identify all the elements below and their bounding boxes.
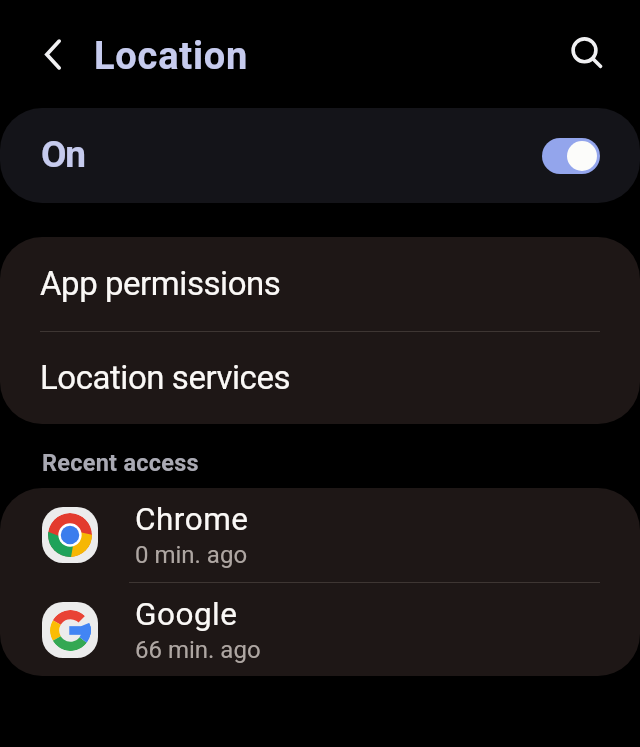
button[interactable]: On <box>0 108 640 203</box>
staticText: Recent access <box>42 449 199 476</box>
staticText: App permissions <box>40 265 281 303</box>
button[interactable]: Search <box>559 25 609 75</box>
button[interactable]: Chrome <box>0 488 640 582</box>
button[interactable]: Location on <box>542 138 600 174</box>
staticText: 66 min. ago <box>135 636 261 664</box>
staticText: Chrome <box>135 501 249 538</box>
button[interactable]: App permissions <box>0 237 640 331</box>
staticText: Location <box>94 34 249 78</box>
staticText: On <box>41 133 85 176</box>
button[interactable]: Navigate up <box>28 29 78 79</box>
button[interactable]: Location services <box>0 332 640 424</box>
staticText: Location services <box>40 359 291 397</box>
staticText: 0 min. ago <box>135 541 248 569</box>
staticText: Google <box>135 596 238 633</box>
button[interactable]: Google <box>0 583 640 676</box>
